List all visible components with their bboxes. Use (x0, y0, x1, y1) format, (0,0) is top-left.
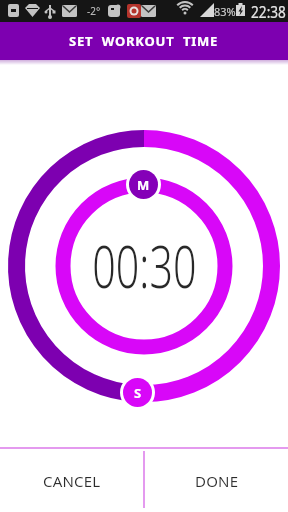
staticText: M (137, 176, 150, 194)
staticText: S (134, 384, 142, 402)
staticText: DONE (195, 471, 239, 491)
button[interactable]: S (123, 378, 152, 407)
staticText: 22:38 (251, 1, 286, 23)
staticText: 00:30 (92, 226, 197, 305)
staticText: CANCEL (43, 471, 101, 491)
button[interactable]: DONE (145, 449, 288, 512)
button[interactable]: CANCEL (0, 449, 143, 512)
button[interactable]: M (129, 170, 158, 199)
staticText: 83% (214, 4, 236, 19)
staticText: -2° (87, 4, 101, 18)
staticText: SET WORKOUT TIME (69, 32, 219, 50)
